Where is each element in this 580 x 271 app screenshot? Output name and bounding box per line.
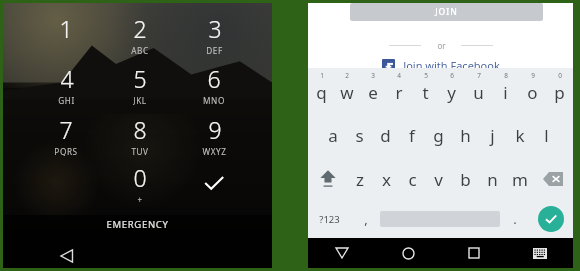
staticText: + <box>137 194 143 204</box>
staticText: j <box>490 124 495 147</box>
staticText: or <box>437 40 446 50</box>
staticText: u <box>473 81 484 104</box>
button[interactable]: 8 <box>108 114 172 156</box>
staticText: 4 <box>60 63 74 94</box>
staticText: 7 <box>477 71 481 80</box>
button[interactable]: x <box>373 158 399 200</box>
staticText: JKL <box>133 95 147 105</box>
staticText: t <box>422 81 429 104</box>
button[interactable]: 2 <box>108 13 172 55</box>
button[interactable]: z <box>347 158 373 200</box>
button[interactable]: Home <box>375 238 441 268</box>
button[interactable]: Shift <box>308 158 347 200</box>
staticText: EMERGENCY <box>106 218 169 231</box>
button[interactable]: Back <box>48 241 84 271</box>
staticText: k <box>515 124 525 147</box>
staticText: f <box>409 124 415 147</box>
button[interactable]: j <box>479 114 506 156</box>
button[interactable]: . <box>500 200 529 238</box>
staticText: i <box>503 81 508 104</box>
staticText: q <box>316 81 327 104</box>
button[interactable]: 9 <box>182 114 246 156</box>
button[interactable]: v <box>425 158 452 200</box>
staticText: . <box>513 210 517 228</box>
button[interactable]: 0 <box>108 162 172 204</box>
button[interactable]: 2 <box>334 70 360 112</box>
button[interactable]: ?123 <box>308 200 351 238</box>
button[interactable]: 5 <box>412 70 438 112</box>
button[interactable]: JOIN <box>350 3 543 21</box>
button[interactable]: l <box>533 114 560 156</box>
button[interactable]: 8 <box>492 70 519 112</box>
button[interactable]: Enter <box>538 206 564 232</box>
staticText: a <box>328 124 338 147</box>
button[interactable]: s <box>346 114 372 156</box>
staticText: 0 <box>133 162 147 193</box>
staticText: Join with Facebook <box>403 58 500 73</box>
staticText: 9 <box>208 114 222 145</box>
staticText: p <box>554 81 565 104</box>
button[interactable]: 6 <box>182 63 246 105</box>
button[interactable]: b <box>452 158 479 200</box>
button[interactable]: c <box>399 158 425 200</box>
button[interactable]: , <box>351 200 380 238</box>
staticText: s <box>355 124 364 147</box>
button[interactable]: g <box>425 114 452 156</box>
staticText: 6 <box>450 71 454 80</box>
staticText: y <box>447 81 456 104</box>
staticText: 9 <box>531 71 535 80</box>
staticText: GHI <box>58 95 75 105</box>
button[interactable]: a <box>320 114 346 156</box>
button[interactable]: Confirm <box>192 166 236 200</box>
staticText: MNO <box>203 95 225 105</box>
staticText: ?123 <box>319 213 340 226</box>
button[interactable]: n <box>479 158 506 200</box>
button[interactable]: h <box>452 114 479 156</box>
staticText: 6 <box>207 63 221 94</box>
staticText: 5 <box>133 63 147 94</box>
button[interactable]: 3 <box>182 13 246 55</box>
staticText: 5 <box>424 71 428 80</box>
staticText: m <box>512 168 528 191</box>
staticText: w <box>340 81 354 104</box>
staticText: n <box>487 168 498 191</box>
button[interactable]: m <box>506 158 533 200</box>
staticText: h <box>460 124 471 147</box>
button[interactable]: Back <box>308 238 375 268</box>
button[interactable]: 7 <box>465 70 492 112</box>
button[interactable]: 1 <box>34 13 98 55</box>
button[interactable]: f <box>398 114 425 156</box>
button[interactable]: 6 <box>438 70 465 112</box>
staticText: c <box>408 168 417 191</box>
staticText: l <box>544 124 549 147</box>
staticText: DEF <box>206 45 223 55</box>
staticText: e <box>368 81 378 104</box>
button[interactable]: 0 <box>546 70 573 112</box>
staticText: 2 <box>345 71 349 80</box>
button[interactable]: 4 <box>386 70 412 112</box>
staticText: 3 <box>371 71 375 80</box>
button[interactable]: 4 <box>34 63 98 105</box>
button[interactable]: d <box>372 114 398 156</box>
staticText: TUV <box>131 146 149 156</box>
button[interactable]: Switch keyboard <box>507 238 573 268</box>
button[interactable]: 1 <box>308 70 334 112</box>
staticText: 1 <box>320 71 324 80</box>
staticText: , <box>364 210 368 228</box>
staticText: d <box>380 124 391 147</box>
button[interactable]: 7 <box>34 114 98 156</box>
staticText: 7 <box>59 114 73 145</box>
button[interactable]: Join with Facebook <box>308 57 573 73</box>
staticText: o <box>527 81 538 104</box>
button[interactable]: 3 <box>360 70 386 112</box>
button[interactable]: Backspace <box>533 158 573 200</box>
button[interactable]: Recents <box>441 238 507 268</box>
button[interactable]: 9 <box>519 70 546 112</box>
button[interactable]: k <box>506 114 533 156</box>
staticText: z <box>356 168 364 191</box>
button[interactable]: EMERGENCY <box>3 213 272 235</box>
button[interactable]: 5 <box>108 63 172 105</box>
staticText: b <box>460 168 471 191</box>
staticText: 0 <box>558 71 562 80</box>
